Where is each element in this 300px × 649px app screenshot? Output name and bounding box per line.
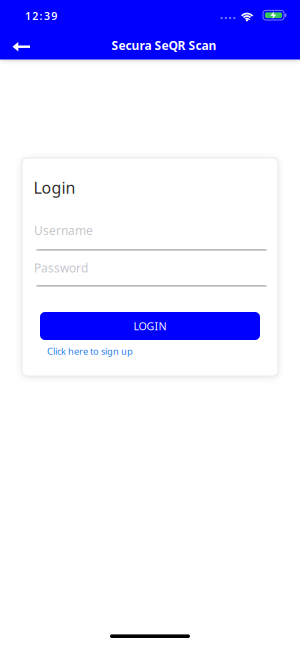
staticText: 3	[44, 9, 50, 23]
staticText: 1	[25, 9, 31, 23]
button[interactable]: Click here to sign up	[47, 345, 133, 357]
button[interactable]: Username	[34, 222, 266, 250]
staticText: Login	[33, 177, 75, 198]
staticText: Password	[34, 260, 88, 276]
button[interactable]: LOGIN	[40, 312, 260, 340]
staticText: 2	[32, 9, 38, 23]
staticText: 9	[51, 9, 57, 23]
staticText: :	[40, 9, 43, 23]
staticText: LOGIN	[133, 319, 166, 333]
staticText: Username	[34, 222, 93, 238]
staticText: Secura SeQR Scan	[111, 37, 216, 53]
button[interactable]	[6, 36, 36, 57]
button[interactable]: Password	[34, 260, 266, 286]
staticText: Click here to sign up	[47, 345, 133, 357]
